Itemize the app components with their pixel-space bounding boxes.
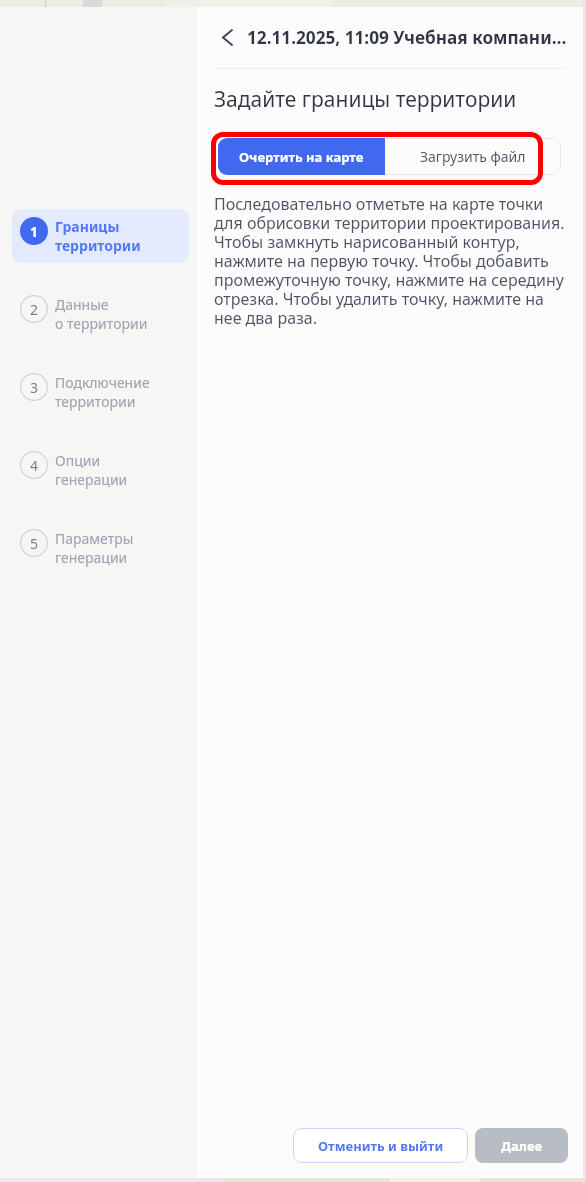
button[interactable]: 4 <box>12 443 189 497</box>
button[interactable]: 2 <box>12 287 189 341</box>
staticText: Данные <box>55 295 109 314</box>
staticText: Опции <box>55 451 101 470</box>
staticText: Загрузить файл <box>420 147 526 166</box>
staticText: территории <box>55 392 136 411</box>
staticText: 4 <box>30 456 39 475</box>
staticText: Границы <box>55 217 120 236</box>
staticText: Последовательно отметьте на карте точки … <box>214 193 568 329</box>
staticText: о территории <box>55 314 148 333</box>
button[interactable]: Далее <box>475 1128 568 1163</box>
staticText: генерации <box>55 470 128 489</box>
button[interactable]: 1 <box>12 209 189 263</box>
staticText: Далее <box>501 1137 543 1155</box>
staticText: 12.11.2025, 11:09 Учебная компани… <box>247 26 567 49</box>
button[interactable]: Загрузить файл <box>385 138 561 175</box>
staticText: 3 <box>30 378 39 397</box>
staticText: Задайте границы территории <box>214 85 517 114</box>
staticText: Подключение <box>55 373 150 392</box>
staticText: Отменить и выйти <box>318 1137 444 1155</box>
staticText: генерации <box>55 548 128 567</box>
button[interactable]: Back <box>211 22 243 53</box>
staticText: 2 <box>30 300 39 319</box>
button[interactable]: Очертить на карте <box>218 138 385 175</box>
button[interactable]: 5 <box>12 521 189 575</box>
button[interactable]: Отменить и выйти <box>293 1128 468 1163</box>
staticText: Очертить на карте <box>239 148 364 166</box>
staticText: Параметры <box>55 529 134 548</box>
staticText: 1 <box>30 222 39 241</box>
button[interactable]: 3 <box>12 365 189 419</box>
staticText: территории <box>55 236 141 255</box>
staticText: 5 <box>30 534 39 553</box>
